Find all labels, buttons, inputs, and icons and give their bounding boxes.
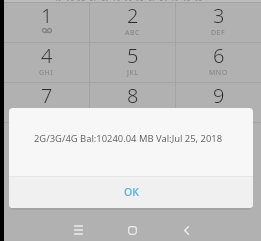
button[interactable]: 8 bbox=[90, 83, 175, 122]
staticText: # bbox=[212, 122, 225, 149]
staticText: DEF bbox=[211, 28, 226, 38]
staticText: GHI bbox=[39, 68, 54, 78]
button[interactable]: Home bbox=[116, 221, 148, 241]
button[interactable]: # bbox=[176, 123, 261, 162]
button[interactable]: 3 bbox=[176, 3, 261, 42]
button[interactable]: * bbox=[4, 123, 89, 162]
button[interactable]: 0 bbox=[90, 123, 175, 162]
staticText: MNO bbox=[209, 68, 228, 78]
button[interactable]: 4 bbox=[4, 43, 89, 82]
staticText: 1 bbox=[41, 2, 53, 29]
staticText: 6 bbox=[213, 42, 225, 69]
button[interactable]: 9 bbox=[176, 83, 261, 122]
staticText: 0 bbox=[127, 122, 139, 149]
button[interactable]: 2 bbox=[90, 3, 175, 42]
button[interactable]: Recent apps bbox=[62, 221, 94, 241]
button[interactable]: 1 bbox=[4, 3, 89, 42]
staticText: 7 bbox=[41, 82, 53, 109]
button[interactable]: Back bbox=[170, 221, 202, 241]
staticText: OK bbox=[124, 185, 139, 199]
staticText: 3 bbox=[213, 2, 225, 29]
staticText: JKL bbox=[127, 68, 139, 78]
staticText: 2G/3G/4G Bal:10240.04 MB Val:Jul 25, 201… bbox=[34, 132, 223, 145]
staticText: ABC bbox=[125, 28, 140, 38]
staticText: 4 bbox=[41, 42, 53, 69]
staticText: * bbox=[41, 122, 53, 149]
button[interactable]: 7 bbox=[4, 83, 89, 122]
staticText: 2 bbox=[127, 2, 139, 29]
button[interactable]: 6 bbox=[176, 43, 261, 82]
staticText: 9 bbox=[213, 82, 225, 109]
staticText: 5 bbox=[127, 42, 139, 69]
button[interactable]: 5 bbox=[90, 43, 175, 82]
staticText: 8 bbox=[127, 82, 139, 109]
button[interactable]: OK bbox=[9, 177, 253, 208]
